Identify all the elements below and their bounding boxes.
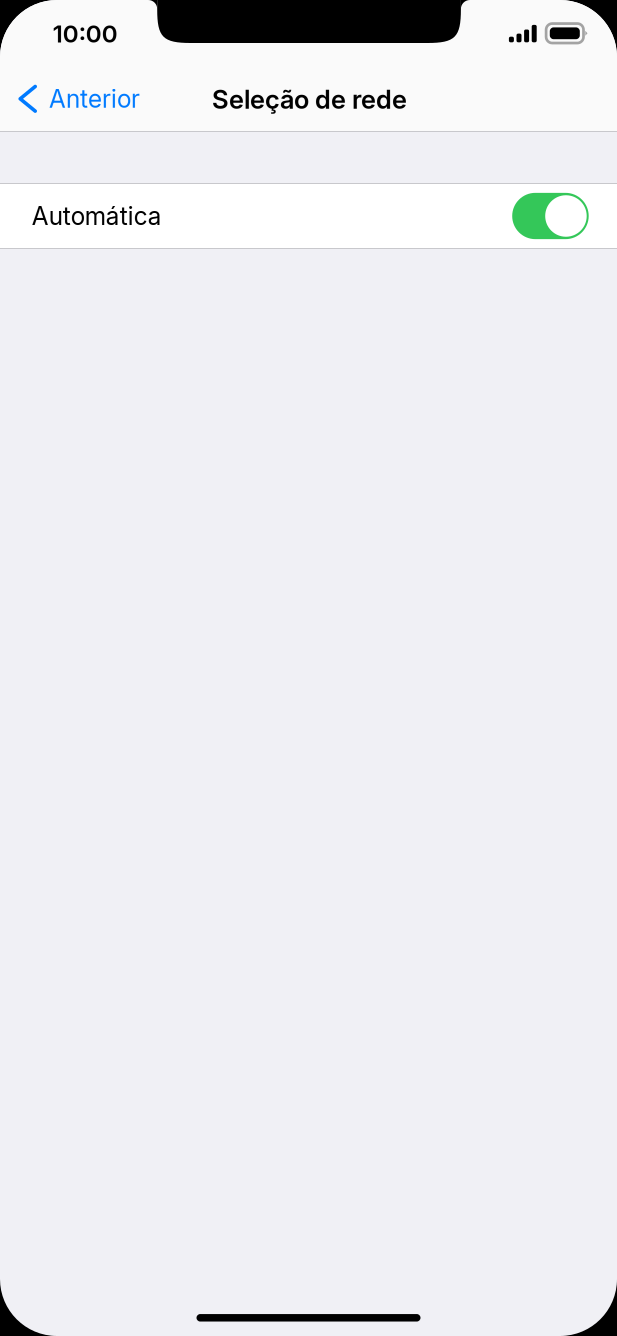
button[interactable]: Anterior	[0, 68, 165, 130]
staticText: 10:00	[53, 19, 118, 48]
staticText: Automática	[32, 201, 162, 231]
staticText: Seleção de rede	[212, 84, 407, 115]
button[interactable]: Automática	[0, 184, 617, 248]
staticText: Anterior	[49, 84, 140, 114]
